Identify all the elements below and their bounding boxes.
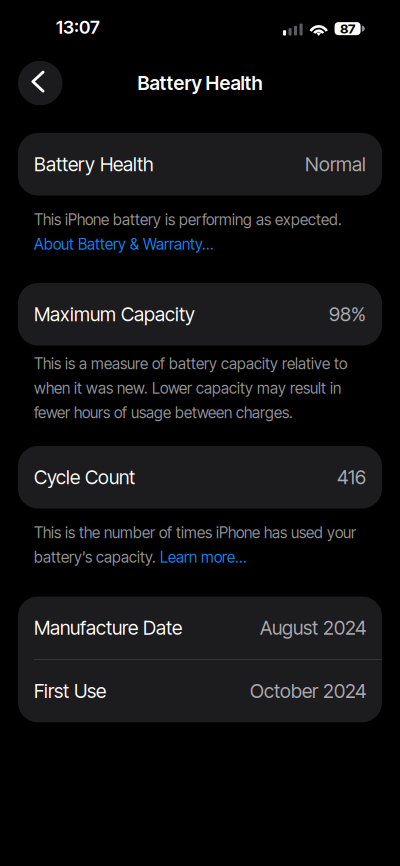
staticText: Learn more... [160,548,247,567]
staticText: About Battery & Warranty... [34,235,214,254]
staticText: 13:07 [56,16,100,38]
staticText: First Use [34,679,106,703]
button[interactable]: First Use [18,660,382,722]
button[interactable]: Back [18,61,62,105]
button[interactable]: Cycle Count [18,446,382,508]
button[interactable]: Learn more... [160,548,247,567]
button[interactable]: About Battery & Warranty... [34,235,214,254]
button[interactable]: Maximum Capacity [18,283,382,345]
staticText: Manufacture Date [34,616,182,639]
button[interactable]: Battery Health [18,133,382,195]
staticText: This is a measure of battery capacity re… [34,354,347,373]
staticText: This iPhone battery is performing as exp… [34,210,342,229]
button[interactable]: Manufacture Date [18,596,382,659]
staticText: August 2024 [260,616,366,639]
staticText: Cycle Count [34,466,135,489]
staticText: battery’s capacity. [34,548,160,567]
staticText: 98% [329,303,366,326]
staticText: Battery Health [34,153,154,176]
staticText: Maximum Capacity [34,303,195,326]
staticText: 416 [337,466,366,489]
staticText: This is the number of times iPhone has u… [34,523,356,542]
staticText: when it was new. Lower capacity may resu… [34,379,341,398]
staticText: October 2024 [250,679,366,703]
staticText: Normal [305,153,366,176]
staticText: Battery Health [137,71,262,95]
staticText: 87 [340,20,355,37]
staticText: fewer hours of usage between charges. [34,403,293,422]
